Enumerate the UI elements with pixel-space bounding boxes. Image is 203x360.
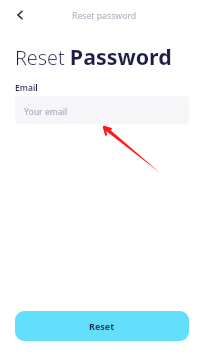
staticText: Reset password: [72, 10, 137, 22]
button[interactable]: Reset: [15, 311, 189, 341]
button[interactable]: Your email: [15, 96, 189, 124]
staticText: Reset: [89, 320, 115, 332]
staticText: Reset Password: [15, 42, 172, 71]
staticText: Your email: [24, 106, 68, 118]
staticText: Email: [15, 82, 38, 94]
button[interactable]: Back: [8, 3, 32, 27]
